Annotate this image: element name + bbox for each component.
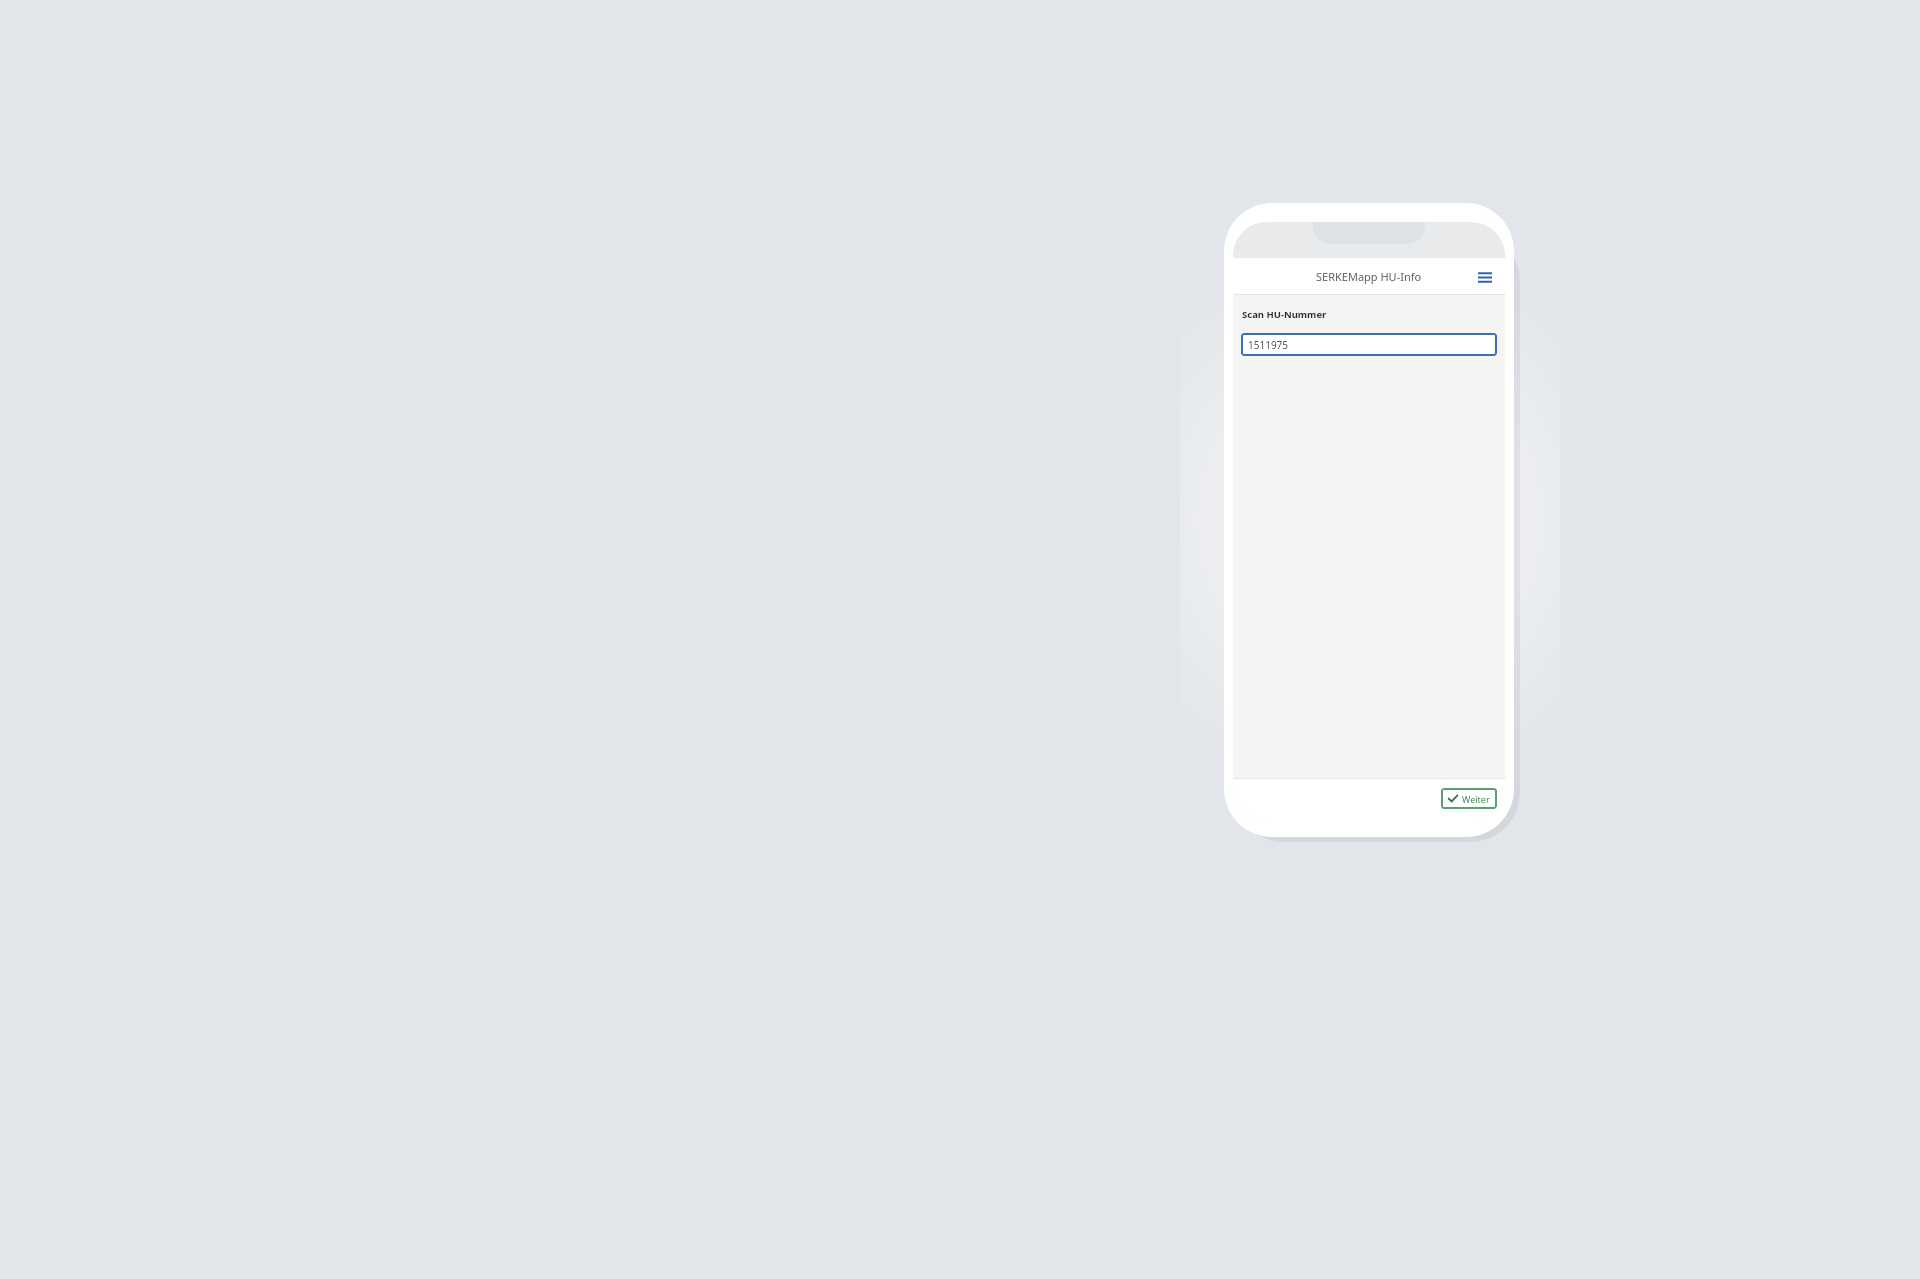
staticText: 1511975 — [1248, 338, 1289, 352]
staticText: SERKEMapp HU-Info — [1316, 269, 1422, 284]
button[interactable]: Open menu — [1472, 264, 1498, 290]
staticText: Scan HU-Nummer — [1242, 308, 1327, 321]
staticText: Weiter — [1462, 793, 1490, 805]
button[interactable]: Weiter — [1441, 788, 1497, 809]
button[interactable]: 1511975 — [1241, 333, 1497, 356]
